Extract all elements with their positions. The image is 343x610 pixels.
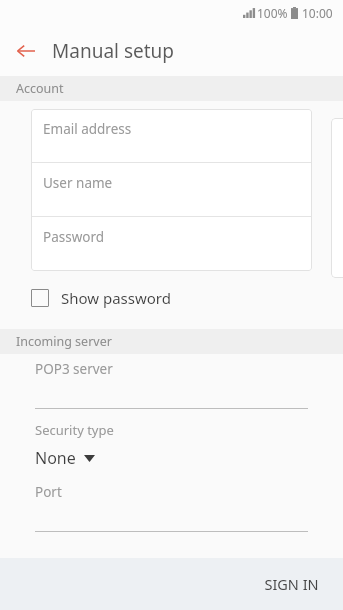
button[interactable]: POP3 server xyxy=(35,360,308,409)
staticText: Incoming server xyxy=(16,333,112,350)
staticText: None xyxy=(35,447,76,469)
staticText: Security type xyxy=(35,421,114,439)
staticText: 100% xyxy=(257,5,288,21)
button[interactable]: Back xyxy=(8,33,44,69)
staticText: Account xyxy=(16,80,64,97)
staticText: Email address xyxy=(43,120,132,138)
staticText: POP3 server xyxy=(35,360,113,378)
staticText: Show password xyxy=(61,288,171,308)
button[interactable]: Port xyxy=(35,483,308,532)
staticText: SIGN IN xyxy=(264,574,319,594)
button[interactable]: User name xyxy=(31,163,312,216)
button[interactable]: Password xyxy=(31,217,312,270)
staticText: 10:00 xyxy=(302,5,333,21)
staticText: Manual setup xyxy=(52,38,174,64)
button[interactable]: Email address xyxy=(31,109,312,162)
button[interactable]: Security type xyxy=(35,421,308,469)
button[interactable]: SIGN IN xyxy=(246,564,337,604)
button[interactable]: Show password xyxy=(31,281,171,315)
staticText: Password xyxy=(43,228,105,246)
staticText: User name xyxy=(43,174,113,192)
staticText: Port xyxy=(35,483,62,501)
